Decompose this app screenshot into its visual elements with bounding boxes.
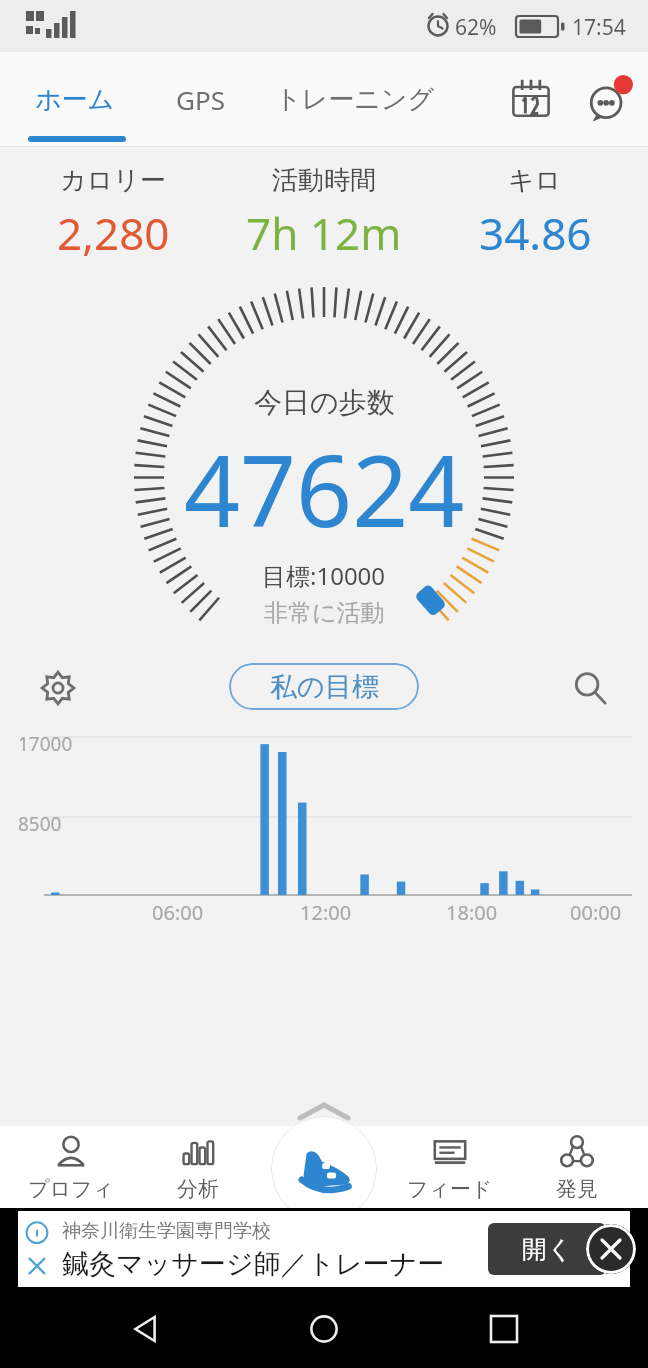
staticText: 12:00	[300, 899, 352, 926]
button[interactable]: GPS	[150, 52, 250, 146]
button[interactable]: ホーム	[0, 52, 150, 146]
button[interactable]: トレーニング	[250, 52, 460, 146]
button[interactable]: 神奈川衛生学園専門学校	[18, 1211, 630, 1287]
button[interactable]: カロリー	[15, 164, 211, 263]
staticText: 開く	[522, 1234, 573, 1265]
staticText: トレーニング	[275, 83, 435, 116]
staticText: 私の目標	[270, 670, 379, 704]
button[interactable]: Recents	[469, 1294, 539, 1364]
button[interactable]: Settings	[34, 664, 82, 712]
staticText: 発見	[556, 1176, 598, 1202]
staticText: 分析	[177, 1176, 219, 1202]
staticText: ホーム	[35, 83, 115, 116]
button[interactable]: Calendar	[492, 60, 570, 138]
button[interactable]: 私の目標	[229, 663, 419, 710]
staticText: 17:54	[572, 13, 626, 42]
staticText: 目標:10000	[262, 559, 386, 592]
staticText: 神奈川衛生学園専門学校	[62, 1219, 271, 1243]
button[interactable]: キロ	[437, 164, 633, 263]
staticText: 00:00	[570, 899, 622, 926]
button[interactable]: プロフィ	[15, 1133, 127, 1202]
staticText: 06:00	[152, 899, 204, 926]
staticText: キロ	[508, 164, 562, 197]
staticText: 今日の歩数	[254, 385, 395, 420]
button[interactable]: Steps	[271, 1116, 377, 1222]
button[interactable]: Messages	[570, 60, 648, 138]
button[interactable]: 開く	[488, 1223, 606, 1275]
staticText: GPS	[176, 82, 225, 117]
staticText: 活動時間	[272, 164, 376, 197]
button[interactable]: Back	[110, 1294, 180, 1364]
button[interactable]: 活動時間	[226, 164, 422, 263]
staticText: 7h 12m	[246, 203, 402, 263]
staticText: 鍼灸マッサージ師／トレーナー	[62, 1247, 445, 1281]
button[interactable]: 分析	[142, 1133, 254, 1202]
button[interactable]: Search	[566, 664, 614, 712]
staticText: カロリー	[60, 164, 166, 197]
staticText: 非常に活動	[264, 598, 385, 628]
staticText: 2,280	[57, 203, 170, 263]
staticText: 34.86	[479, 203, 592, 263]
staticText: プロフィ	[28, 1176, 114, 1202]
button[interactable]: 発見	[521, 1133, 633, 1202]
staticText: 62%	[455, 13, 497, 42]
staticText: 8500	[18, 811, 62, 837]
staticText: 18:00	[446, 899, 498, 926]
staticText: フィード	[407, 1176, 493, 1202]
staticText: 47624	[184, 422, 465, 555]
staticText: 17000	[18, 731, 73, 757]
button[interactable]: Close ad	[586, 1224, 636, 1274]
button[interactable]: Home	[289, 1294, 359, 1364]
button[interactable]: フィード	[394, 1133, 506, 1202]
